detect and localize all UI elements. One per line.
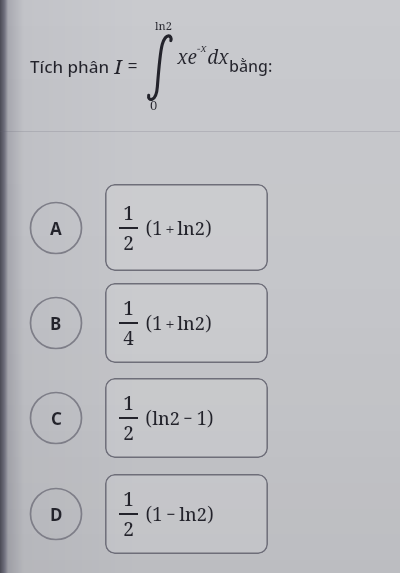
staticText: 2 bbox=[123, 420, 134, 446]
staticText: ln2 bbox=[152, 406, 180, 431]
staticText: − bbox=[166, 503, 176, 525]
staticText: C bbox=[51, 407, 62, 430]
staticText: ) bbox=[205, 215, 212, 241]
staticText: (1 bbox=[145, 501, 163, 527]
staticText: ln2 bbox=[177, 216, 205, 241]
button[interactable]: Option A bbox=[0, 184, 400, 271]
staticText: 2 bbox=[123, 230, 134, 256]
staticText: 1) bbox=[196, 405, 214, 431]
staticText: −x bbox=[197, 40, 207, 55]
staticText: 1 bbox=[123, 200, 134, 226]
staticText: ln2 bbox=[155, 18, 172, 33]
staticText: (1 bbox=[145, 310, 163, 336]
staticText: 1 bbox=[123, 390, 134, 416]
staticText: B bbox=[50, 312, 62, 335]
staticText: 1 bbox=[123, 295, 134, 321]
button[interactable]: Option B bbox=[29, 296, 83, 350]
button[interactable]: 1 bbox=[105, 378, 268, 458]
staticText: bằng: bbox=[229, 55, 273, 77]
staticText: D bbox=[50, 503, 63, 526]
button[interactable]: Option C bbox=[29, 391, 83, 445]
button[interactable]: 1 bbox=[105, 474, 268, 554]
button[interactable]: Option A bbox=[29, 201, 83, 255]
staticText: ) bbox=[207, 501, 214, 527]
staticText: Tích phân bbox=[30, 55, 114, 78]
staticText: ln2 bbox=[177, 311, 205, 336]
button[interactable]: Option D bbox=[0, 474, 400, 554]
staticText: − bbox=[183, 407, 193, 429]
staticText: ln2 bbox=[179, 502, 207, 527]
staticText: xe bbox=[177, 44, 197, 70]
staticText: = bbox=[127, 53, 138, 79]
staticText: ( bbox=[145, 405, 152, 431]
staticText: dx bbox=[207, 44, 229, 70]
staticText: 2 bbox=[123, 516, 134, 542]
button[interactable]: Option C bbox=[0, 378, 400, 458]
staticText: 0 bbox=[150, 96, 158, 114]
button[interactable]: Option B bbox=[0, 283, 400, 363]
staticText: ) bbox=[205, 310, 212, 336]
button[interactable]: Option D bbox=[29, 487, 83, 541]
staticText: 4 bbox=[123, 325, 134, 351]
staticText: I bbox=[114, 53, 122, 80]
staticText: + bbox=[165, 312, 175, 335]
staticText: + bbox=[165, 217, 175, 240]
staticText: 1 bbox=[123, 486, 134, 512]
staticText: (1 bbox=[145, 215, 163, 241]
staticText: A bbox=[50, 217, 62, 240]
button[interactable]: 1 bbox=[105, 283, 268, 363]
button[interactable]: 1 bbox=[105, 184, 268, 271]
